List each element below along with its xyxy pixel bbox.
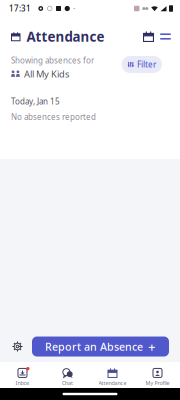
staticText: Showing absences for	[11, 55, 94, 66]
button[interactable]: Chat	[45, 363, 90, 387]
staticText: All My Kids	[24, 68, 69, 80]
staticText: Inbox	[15, 379, 29, 387]
staticText: My Profile	[145, 379, 169, 387]
staticText: Chat	[62, 379, 73, 387]
staticText: Attendance	[98, 379, 126, 387]
button[interactable]: Report an Absence	[32, 336, 169, 356]
button[interactable]: Menu	[157, 28, 174, 45]
button[interactable]: Settings	[12, 341, 23, 352]
staticText: Attendance	[20, 28, 104, 45]
staticText: No absences reported	[11, 112, 96, 122]
button[interactable]: Calendar view	[140, 28, 157, 45]
button[interactable]: My Profile	[135, 363, 180, 387]
button[interactable]: Attendance	[90, 363, 135, 387]
staticText: Filter	[137, 59, 156, 70]
button[interactable]: Inbox	[0, 363, 45, 387]
staticText: 17:31	[9, 3, 31, 14]
staticText: Report an Absence	[45, 339, 143, 354]
staticText: Today, Jan 15	[11, 96, 60, 107]
button[interactable]: Filter	[121, 56, 162, 73]
staticText: +	[148, 338, 156, 355]
